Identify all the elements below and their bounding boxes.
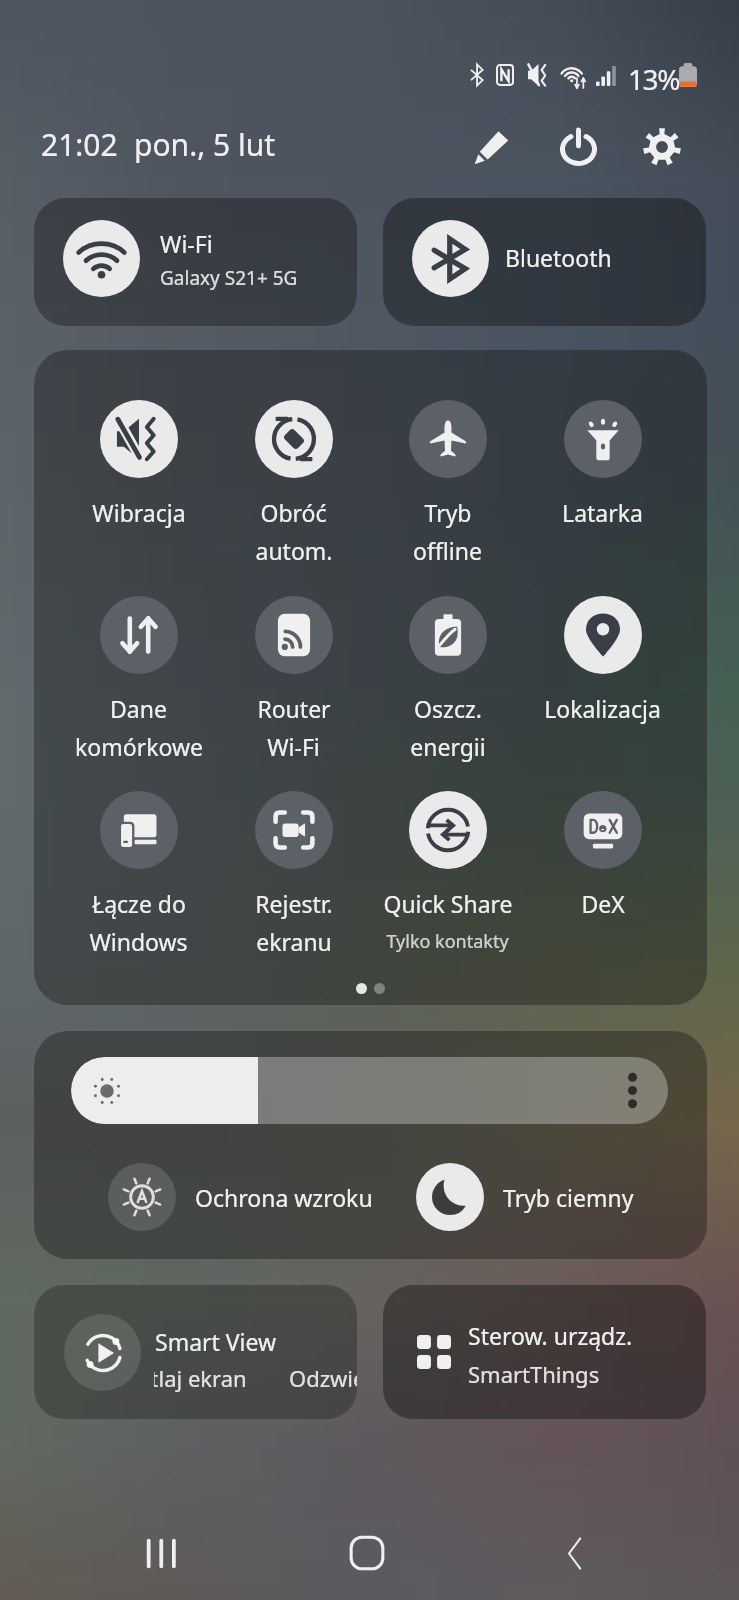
- staticText: Ochrona wzroku: [195, 1182, 373, 1213]
- button[interactable]: Recent apps: [100, 1493, 220, 1600]
- staticText: Wi-Fi: [267, 731, 320, 762]
- button[interactable]: Latarka: [525, 400, 680, 528]
- staticText: Rejestr.: [255, 888, 333, 919]
- staticText: energii: [410, 731, 486, 762]
- staticText: Wi-Fi: [160, 228, 213, 259]
- staticText: SmartThings: [468, 1359, 600, 1389]
- staticText: Latarka: [562, 497, 643, 528]
- staticText: Tylko kontakty: [386, 929, 509, 954]
- staticText: Łącze do: [92, 888, 186, 919]
- staticText: Tryb ciemny: [503, 1182, 634, 1213]
- staticText: pon., 5 lut: [134, 124, 276, 165]
- button[interactable]: Home: [307, 1493, 427, 1600]
- button[interactable]: Lokalizacja: [525, 596, 680, 724]
- staticText: DeX: [581, 888, 625, 919]
- button[interactable]: Quick Share: [370, 791, 525, 954]
- staticText: komórkowe: [75, 731, 203, 762]
- staticText: Dane: [110, 693, 167, 724]
- button[interactable]: Oszcz.: [370, 596, 525, 762]
- staticText: Tryb: [424, 497, 472, 528]
- staticText: Galaxy S21+ 5G: [160, 265, 298, 291]
- staticText: autom.: [255, 535, 333, 566]
- button[interactable]: Sterow. urządz.: [383, 1285, 706, 1419]
- staticText: Wyświetlaj ekran: [154, 1363, 276, 1393]
- button[interactable]: Settings: [632, 117, 692, 177]
- button[interactable]: Łącze do: [61, 791, 216, 957]
- button[interactable]: Back: [515, 1493, 635, 1600]
- staticText: Oszcz.: [414, 693, 482, 724]
- staticText: 13%: [628, 60, 680, 98]
- staticText: Obróć: [260, 497, 327, 528]
- staticText: Sterow. urządz.: [468, 1320, 633, 1351]
- button[interactable]: Dane: [61, 596, 216, 762]
- staticText: Bluetooth: [505, 242, 612, 273]
- staticText: Windows: [89, 926, 188, 957]
- button[interactable]: Router: [216, 596, 371, 762]
- button[interactable]: DeX: [525, 791, 680, 919]
- button[interactable]: Wibracja: [61, 400, 216, 528]
- staticText: 21:02: [41, 124, 118, 165]
- staticText: offline: [413, 535, 482, 566]
- button[interactable]: Smart View: [34, 1285, 357, 1419]
- staticText: Router: [257, 693, 331, 724]
- staticText: Smart View: [155, 1326, 277, 1357]
- button[interactable]: Tryb: [370, 400, 525, 566]
- button[interactable]: Power: [548, 117, 608, 177]
- button[interactable]: Tryb ciemny: [416, 1163, 634, 1231]
- button[interactable]: Ochrona wzroku: [108, 1163, 373, 1231]
- button[interactable]: Brightness options: [71, 1057, 668, 1124]
- button[interactable]: Edit quick settings: [462, 117, 522, 177]
- staticText: Wibracja: [92, 497, 186, 528]
- button[interactable]: Obróć: [216, 400, 371, 566]
- staticText: Odzwierciedlaj: [289, 1363, 357, 1393]
- button[interactable]: Brightness options: [596, 1057, 668, 1124]
- button[interactable]: Rejestr.: [216, 791, 371, 957]
- button[interactable]: Wi-Fi: [34, 198, 357, 326]
- staticText: ekranu: [256, 926, 332, 957]
- staticText: Lokalizacja: [544, 693, 661, 724]
- staticText: Quick Share: [383, 888, 513, 919]
- button[interactable]: Bluetooth: [383, 198, 706, 326]
